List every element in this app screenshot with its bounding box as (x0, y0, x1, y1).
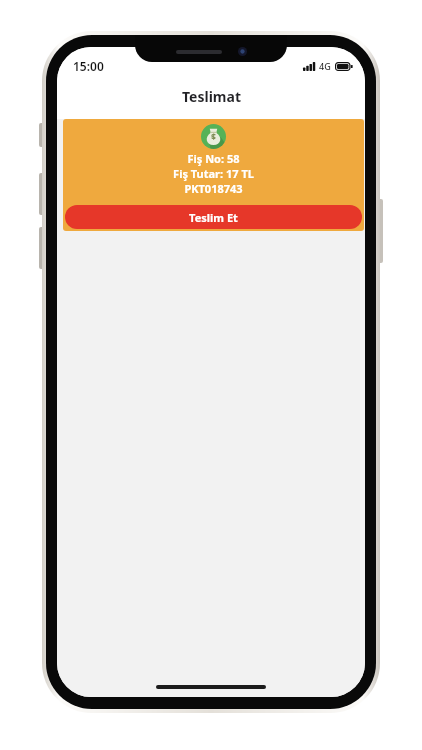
staticText: 15:00 (73, 58, 104, 74)
other: Payment amount (201, 124, 226, 149)
staticText: Teslim Et (189, 210, 238, 225)
staticText: Fiş No: 58 (187, 151, 240, 166)
staticText: Fiş Tutar: 17 TL (173, 166, 254, 181)
button[interactable]: Teslim Et (65, 205, 362, 229)
staticText: PKT018743 (184, 181, 243, 196)
button[interactable]: Payment amount (63, 119, 364, 231)
staticText: Teslimat (182, 87, 241, 106)
staticText: 4G (319, 60, 331, 72)
